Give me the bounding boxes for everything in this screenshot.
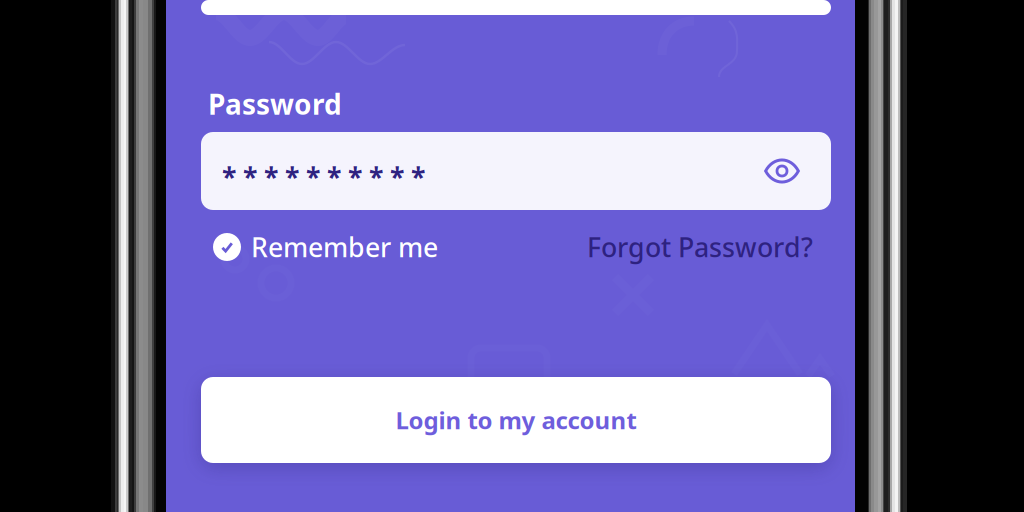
button[interactable]: Show password [764,157,800,184]
staticText: Password [208,85,342,123]
button[interactable]: Login to my account [201,377,831,463]
button[interactable]: Remember me [213,229,438,265]
button[interactable]: Forgot Password? [587,229,813,265]
staticText: Login to my account [395,404,636,436]
staticText: Remember me [251,229,438,265]
staticText: * * * * * * * * * * [222,159,425,195]
staticText: Forgot Password? [587,229,813,265]
